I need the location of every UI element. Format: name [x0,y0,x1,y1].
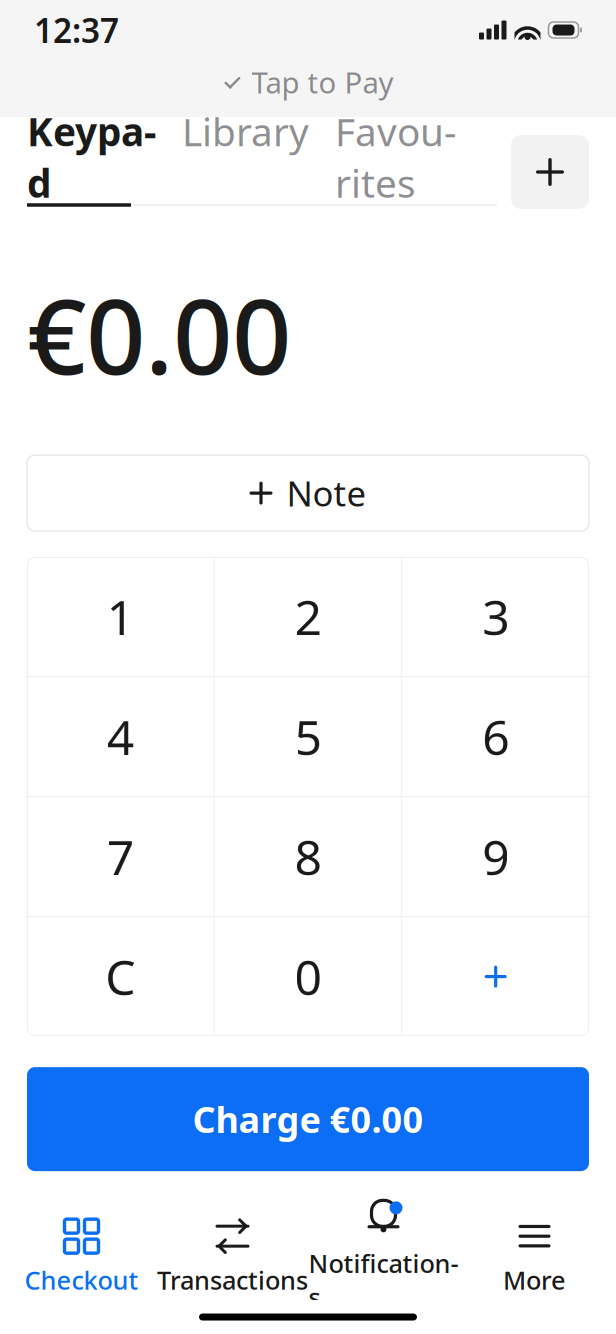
button[interactable]: Add [402,917,589,1036]
button[interactable]: Note [27,455,589,531]
staticText: Favourites [335,106,456,208]
staticText: 1 [107,585,134,648]
button[interactable]: Add item [511,135,589,209]
button[interactable]: 1 [27,557,214,676]
staticText: 2 [294,585,321,648]
button[interactable]: 6 [402,677,589,796]
button[interactable]: 8 [215,797,401,916]
staticText: €0.00 [27,265,291,403]
staticText: Note [286,470,366,516]
staticText: Notifications [308,1246,458,1314]
staticText: Transactions [157,1263,308,1297]
button[interactable]: Tap to Pay [0,60,616,104]
button[interactable]: Notifications [308,1214,459,1300]
staticText: 0 [294,945,321,1008]
staticText: Keypad [27,106,156,208]
staticText: Charge €0.00 [192,1095,423,1143]
button[interactable]: 9 [402,797,589,916]
button[interactable]: 2 [215,557,401,676]
staticText: 8 [294,825,321,888]
button[interactable]: Charge €0.00 [27,1067,589,1171]
button[interactable]: 3 [402,557,589,676]
button[interactable]: Library [182,106,309,157]
button[interactable]: 7 [27,797,214,916]
button[interactable]: 0 [215,917,401,1036]
staticText: 12:37 [34,8,119,52]
button[interactable]: Checkout [6,1214,157,1300]
staticText: 9 [482,825,509,888]
button[interactable]: 4 [27,677,214,796]
staticText: 3 [482,585,509,648]
button[interactable]: 5 [215,677,401,796]
button[interactable]: More [459,1214,610,1300]
button[interactable]: Keypad [27,106,156,208]
staticText: 6 [482,705,509,768]
staticText: Checkout [24,1263,138,1297]
button[interactable]: Transactions [157,1214,308,1300]
button[interactable]: Favourites [335,106,456,208]
staticText: Tap to Pay [251,62,393,101]
staticText: 7 [107,825,134,888]
staticText: More [503,1263,566,1297]
button[interactable]: C [27,917,214,1036]
staticText: 5 [294,705,321,768]
staticText: 4 [107,705,134,768]
staticText: Library [182,106,309,157]
staticText: C [105,945,135,1008]
